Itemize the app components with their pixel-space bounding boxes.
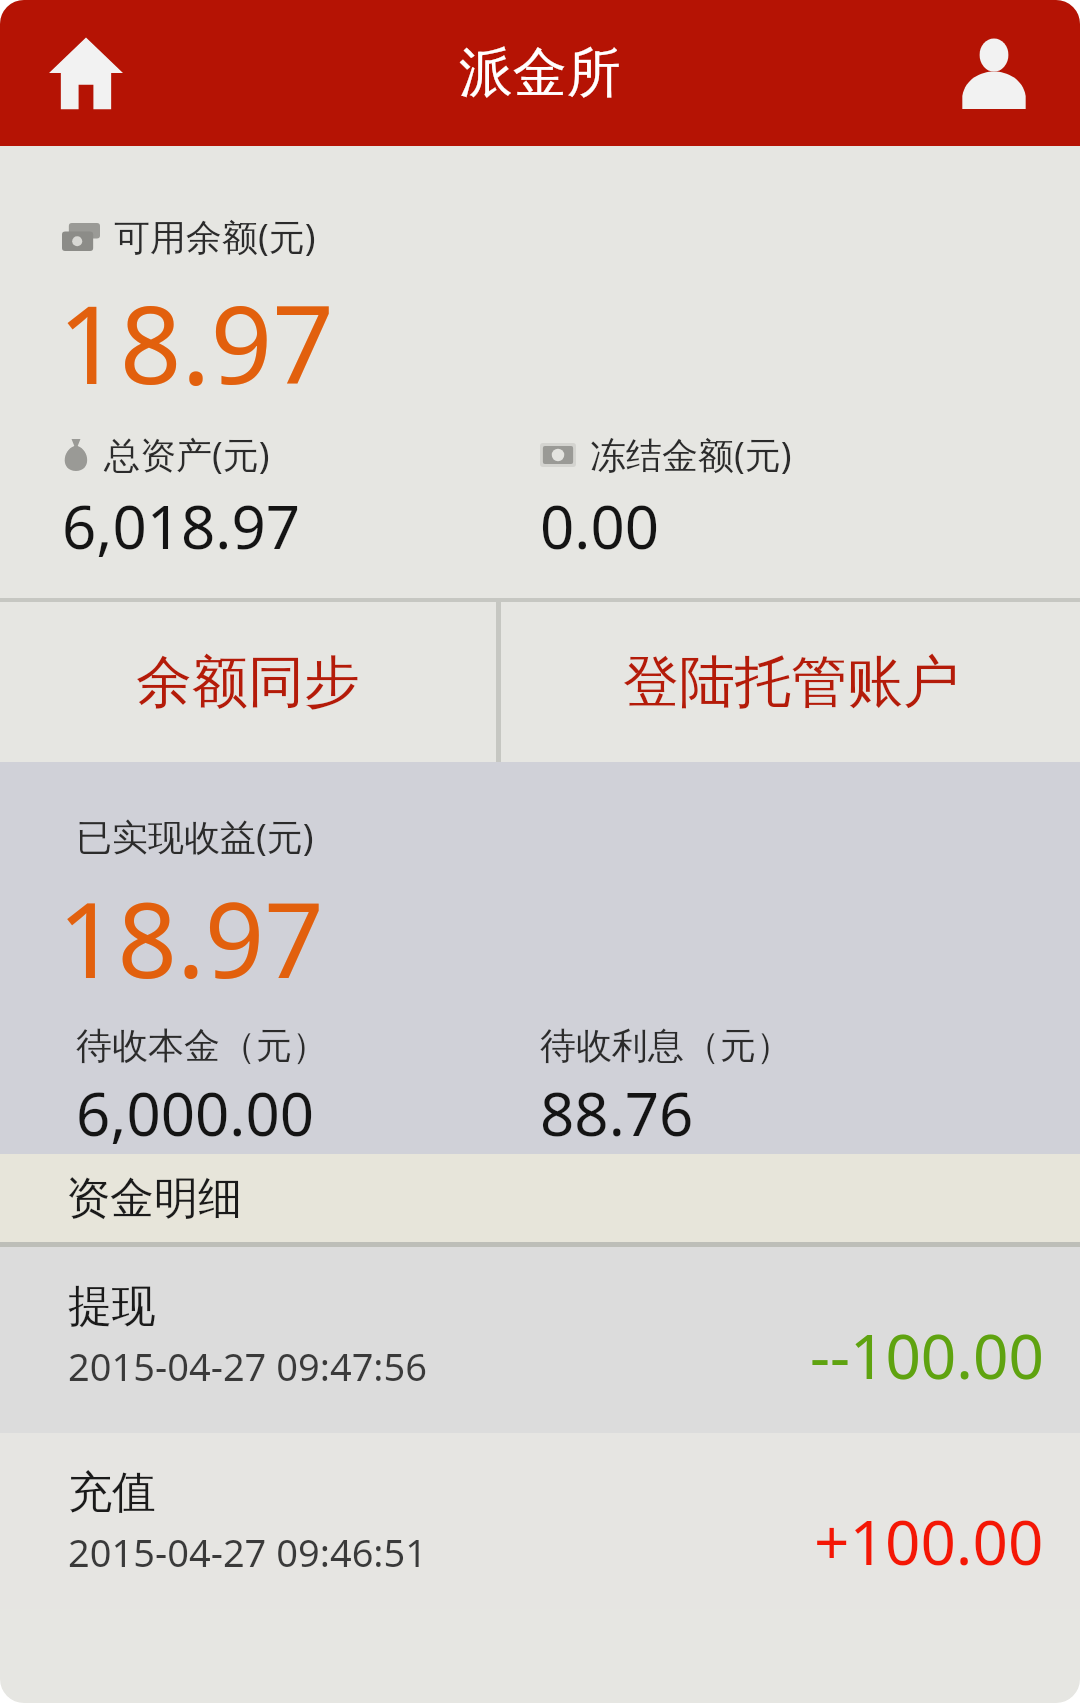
staticText: 提现	[68, 1279, 156, 1334]
staticText: 88.76	[540, 1072, 694, 1154]
staticText: 冻结金额(元)	[590, 430, 792, 479]
staticText: --100.00	[810, 1313, 1044, 1397]
staticText: 18.97	[58, 867, 324, 1009]
staticText: 派金所	[459, 39, 621, 107]
button[interactable]: Profile	[942, 21, 1046, 125]
staticText: 余额同步	[136, 647, 360, 718]
staticText: 0.00	[540, 485, 660, 567]
staticText: 6,018.97	[62, 485, 301, 567]
staticText: 登陆托管账户	[623, 647, 959, 718]
staticText: 2015-04-27 09:46:51	[68, 1526, 428, 1578]
staticText: 18.97	[58, 269, 335, 416]
staticText: 已实现收益(元)	[76, 812, 314, 861]
staticText: 待收本金（元）	[76, 1023, 328, 1068]
staticText: +100.00	[814, 1499, 1044, 1583]
staticText: 2015-04-27 09:47:56	[68, 1340, 428, 1392]
staticText: 6,000.00	[76, 1072, 315, 1154]
button[interactable]: 提现	[0, 1247, 1080, 1433]
staticText: 资金明细	[66, 1171, 242, 1226]
staticText: 待收利息（元）	[540, 1023, 792, 1068]
button[interactable]: Home	[34, 21, 138, 125]
staticText: 可用余额(元)	[114, 212, 316, 261]
button[interactable]: 登陆托管账户	[501, 602, 1080, 762]
button[interactable]: 余额同步	[0, 602, 496, 762]
staticText: 充值	[68, 1465, 156, 1520]
button[interactable]: 充值	[0, 1433, 1080, 1609]
staticText: 总资产(元)	[104, 430, 270, 479]
